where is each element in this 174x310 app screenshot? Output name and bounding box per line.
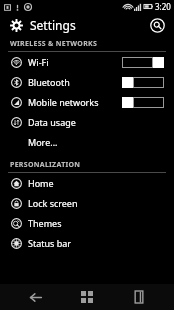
button[interactable]: Settings <box>7 16 25 34</box>
button[interactable]: Off <box>122 77 164 88</box>
staticText: More... <box>28 136 58 148</box>
button[interactable]: More... <box>0 132 174 152</box>
button[interactable]: On <box>122 57 164 68</box>
button[interactable]: Bluetooth <box>0 72 174 92</box>
button[interactable]: Back <box>18 284 52 310</box>
button[interactable]: Recent apps <box>70 284 104 310</box>
staticText: Bluetooth <box>28 76 70 88</box>
button[interactable]: Lock screen <box>0 193 174 213</box>
button[interactable]: Mobile networks <box>0 92 174 112</box>
button[interactable]: Home <box>122 284 156 310</box>
button[interactable]: Off <box>122 97 164 108</box>
staticText: PERSONALIZATION <box>10 160 81 170</box>
staticText: WIRELESS & NETWORKS <box>10 39 98 49</box>
staticText: Settings <box>30 17 76 33</box>
staticText: Data usage <box>28 116 76 128</box>
button[interactable]: Data usage <box>0 112 174 132</box>
staticText: Themes <box>28 217 62 229</box>
button[interactable]: Search <box>147 15 167 35</box>
button[interactable]: Themes <box>0 213 174 233</box>
staticText: Lock screen <box>28 197 78 209</box>
staticText: Status bar <box>28 237 72 249</box>
staticText: Wi-Fi <box>28 56 49 68</box>
button[interactable]: Wi-Fi <box>0 52 174 72</box>
button[interactable]: Home <box>0 173 174 193</box>
button[interactable]: Status bar <box>0 233 174 253</box>
staticText: 3:20 <box>155 1 171 12</box>
staticText: Home <box>28 177 54 189</box>
staticText: Mobile networks <box>28 96 99 108</box>
